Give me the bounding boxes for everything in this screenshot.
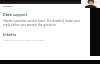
staticText: Lorem ipsum dolor sit amet consectetur bbox=[3, 39, 45, 42]
staticText: In dark to bbox=[3, 33, 17, 37]
button[interactable]: Profile photo bbox=[85, 0, 100, 8]
button[interactable]: SUPPORT bbox=[3, 5, 13, 8]
staticText: Stands customer service team. If a detai… bbox=[3, 19, 86, 27]
staticText: Dark bbox=[3, 12, 12, 17]
staticText: support bbox=[13, 12, 28, 17]
